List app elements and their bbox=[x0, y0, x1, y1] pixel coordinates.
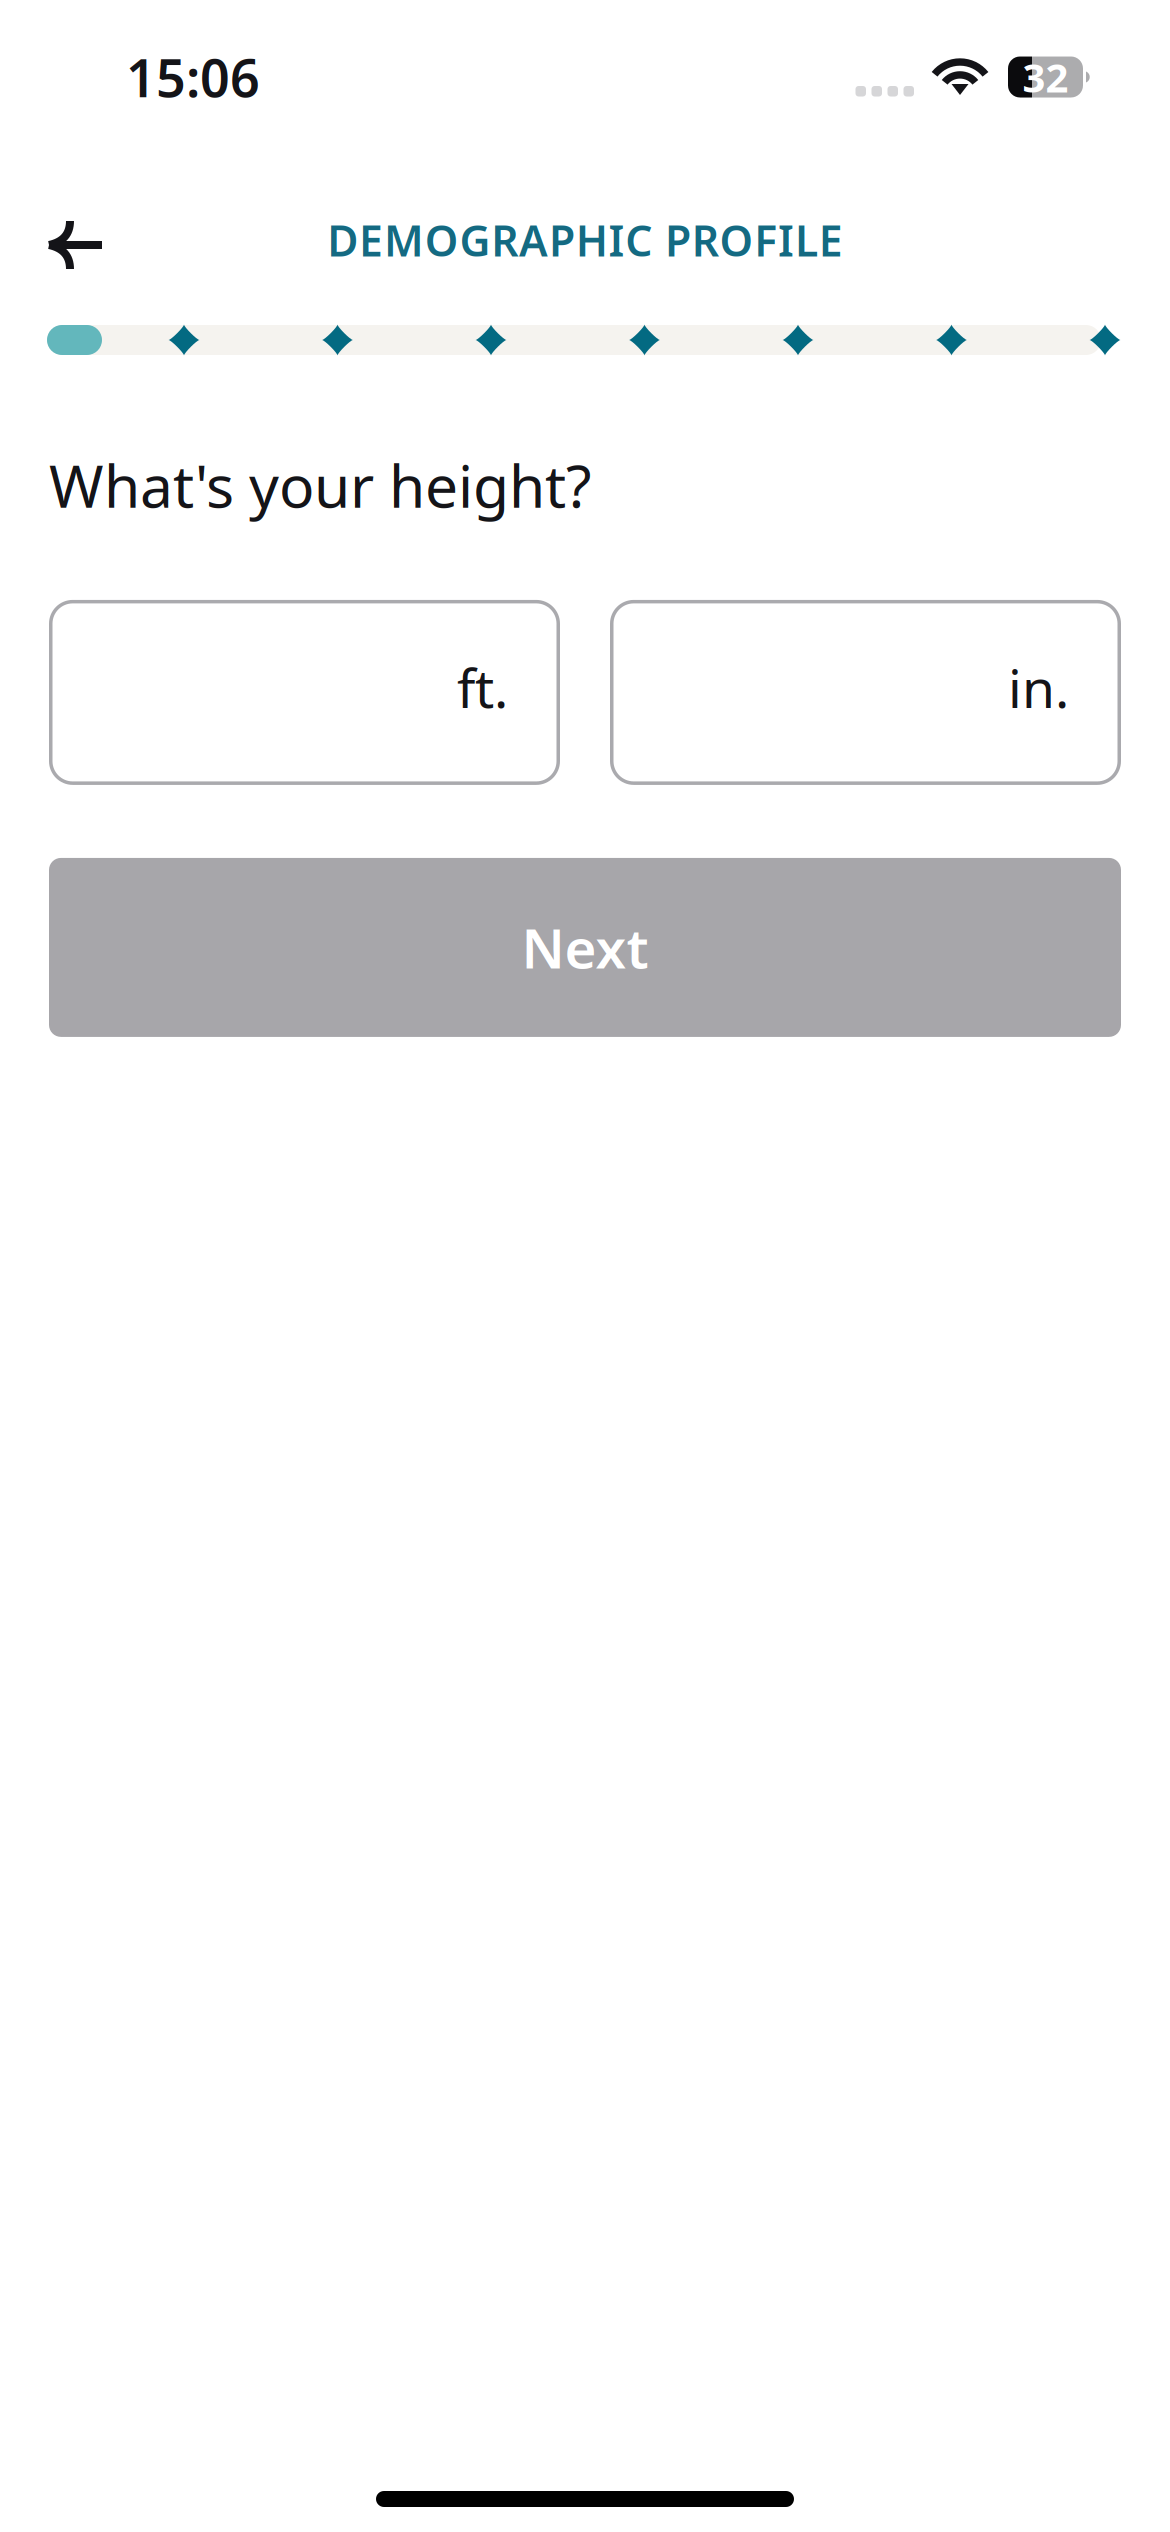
staticText: Next bbox=[521, 911, 648, 984]
staticText: 15:06 bbox=[126, 42, 260, 112]
button[interactable]: Next bbox=[49, 858, 1121, 1037]
button[interactable]: Back bbox=[0, 198, 128, 286]
staticText: in. bbox=[1008, 652, 1069, 723]
button[interactable]: in. bbox=[610, 600, 1121, 785]
staticText: ft. bbox=[457, 652, 508, 723]
staticText: DEMOGRAPHIC PROFILE bbox=[327, 212, 843, 268]
button[interactable]: ft. bbox=[49, 600, 560, 785]
staticText: 32 bbox=[1022, 50, 1068, 103]
staticText: What's your height? bbox=[49, 446, 591, 524]
